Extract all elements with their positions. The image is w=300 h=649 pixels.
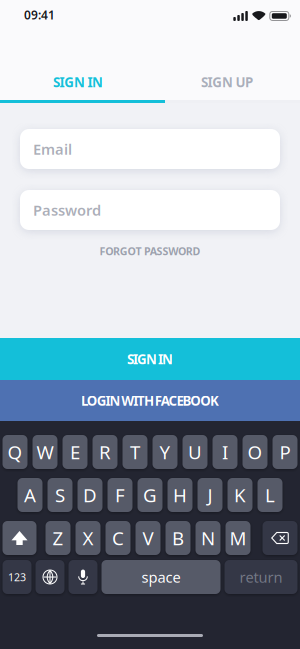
- button[interactable]: J: [197, 478, 222, 512]
- staticText: W: [36, 440, 53, 464]
- button[interactable]: 123: [2, 560, 31, 594]
- button[interactable]: L: [257, 478, 282, 512]
- button[interactable]: A: [17, 478, 42, 512]
- button[interactable]: Dictate: [68, 560, 97, 594]
- staticText: C: [112, 526, 124, 550]
- button[interactable]: O: [242, 435, 267, 469]
- button[interactable]: R: [92, 435, 117, 469]
- button[interactable]: I: [212, 435, 237, 469]
- staticText: G: [143, 483, 157, 507]
- staticText: O: [247, 440, 262, 464]
- staticText: L: [265, 483, 275, 507]
- staticText: Z: [52, 526, 63, 550]
- staticText: J: [207, 483, 212, 507]
- button[interactable]: X: [75, 521, 100, 555]
- button[interactable]: K: [227, 478, 252, 512]
- staticText: X: [82, 526, 93, 550]
- button[interactable]: SIGN UP: [150, 64, 300, 100]
- staticText: H: [173, 483, 187, 507]
- staticText: D: [83, 483, 97, 507]
- staticText: M: [229, 526, 246, 550]
- button[interactable]: T: [122, 435, 147, 469]
- button[interactable]: S: [47, 478, 72, 512]
- button[interactable]: E: [62, 435, 87, 469]
- button[interactable]: H: [167, 478, 192, 512]
- button[interactable]: V: [135, 521, 160, 555]
- staticText: LOGIN WITH FACEBOOK: [81, 392, 219, 409]
- button[interactable]: FORGOT PASSWORD: [99, 244, 201, 258]
- button[interactable]: return: [224, 560, 297, 594]
- staticText: V: [142, 526, 153, 550]
- staticText: P: [279, 440, 290, 464]
- button[interactable]: M: [225, 521, 250, 555]
- button[interactable]: W: [32, 435, 57, 469]
- staticText: Y: [159, 440, 170, 464]
- staticText: return: [239, 567, 282, 587]
- button[interactable]: Password: [20, 190, 280, 230]
- button[interactable]: U: [182, 435, 207, 469]
- staticText: F: [115, 483, 125, 507]
- button[interactable]: space: [101, 560, 220, 594]
- button[interactable]: Shift: [2, 521, 36, 555]
- staticText: N: [201, 526, 215, 550]
- button[interactable]: Q: [2, 435, 27, 469]
- button[interactable]: Email: [20, 129, 280, 169]
- staticText: SIGN UP: [201, 73, 253, 91]
- staticText: A: [24, 483, 36, 507]
- staticText: Password: [33, 200, 101, 220]
- staticText: B: [172, 526, 184, 550]
- button[interactable]: Z: [45, 521, 70, 555]
- staticText: T: [130, 440, 140, 464]
- button[interactable]: SIGN IN: [0, 338, 300, 380]
- button[interactable]: D: [77, 478, 102, 512]
- button[interactable]: LOGIN WITH FACEBOOK: [0, 380, 300, 421]
- button[interactable]: Y: [152, 435, 177, 469]
- button[interactable]: N: [195, 521, 220, 555]
- button[interactable]: C: [105, 521, 130, 555]
- staticText: 09:41: [24, 7, 55, 23]
- button[interactable]: SIGN IN: [0, 64, 150, 100]
- staticText: FORGOT PASSWORD: [99, 244, 201, 258]
- staticText: SIGN IN: [127, 350, 173, 368]
- staticText: SIGN IN: [53, 73, 103, 91]
- button[interactable]: Next keyboard: [35, 560, 64, 594]
- button[interactable]: Delete: [262, 521, 297, 555]
- staticText: space: [141, 567, 180, 587]
- staticText: R: [99, 440, 111, 464]
- staticText: I: [222, 440, 228, 464]
- button[interactable]: B: [165, 521, 190, 555]
- staticText: K: [234, 483, 246, 507]
- staticText: Q: [7, 440, 22, 464]
- button[interactable]: P: [272, 435, 297, 469]
- button[interactable]: G: [137, 478, 162, 512]
- staticText: 123: [8, 570, 26, 584]
- button[interactable]: F: [107, 478, 132, 512]
- staticText: Email: [33, 139, 72, 159]
- staticText: U: [188, 440, 202, 464]
- staticText: E: [70, 440, 80, 464]
- staticText: S: [55, 483, 65, 507]
